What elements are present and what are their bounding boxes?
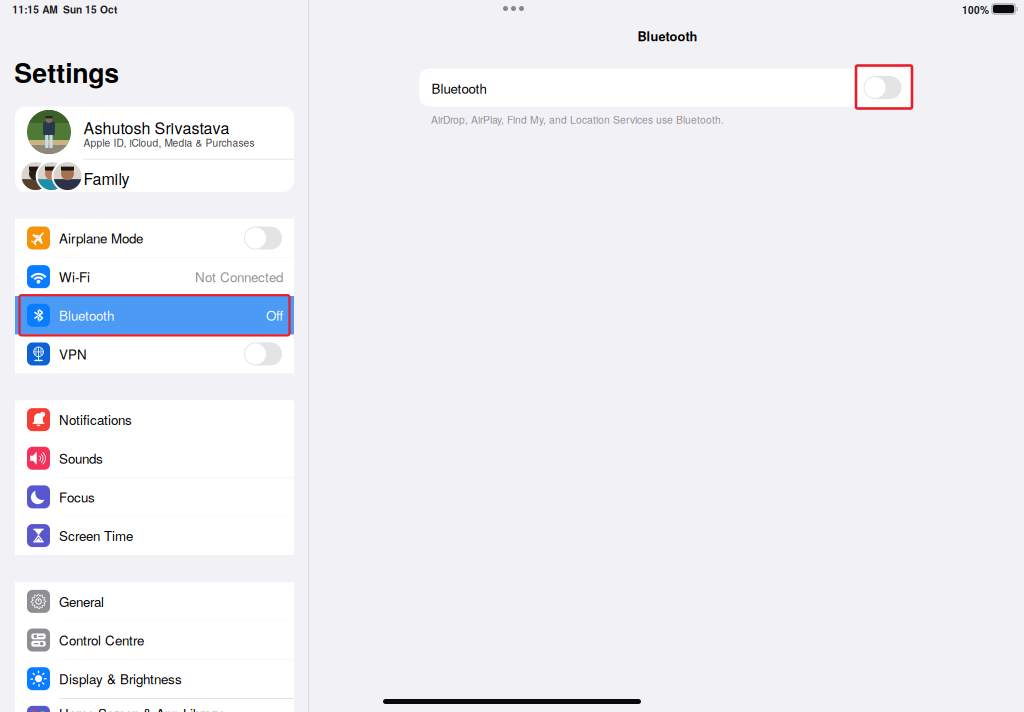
- staticText: Family: [83, 167, 129, 189]
- button[interactable]: Control Centre: [15, 621, 294, 659]
- staticText: 11:15 AM: [12, 2, 57, 17]
- staticText: Focus: [59, 487, 95, 506]
- staticText: Not Connected: [195, 267, 283, 286]
- staticText: General: [59, 592, 104, 611]
- staticText: Bluetooth: [637, 27, 697, 45]
- button[interactable]: Bluetooth: [419, 68, 913, 106]
- button[interactable]: Focus: [15, 478, 294, 516]
- button[interactable]: Wi-Fi: [15, 257, 294, 296]
- staticText: Off: [266, 305, 283, 325]
- button[interactable]: Airplane Mode: [15, 219, 294, 257]
- button[interactable]: VPN: [15, 335, 294, 373]
- staticText: 100%: [962, 2, 989, 17]
- staticText: Screen Time: [59, 526, 133, 545]
- staticText: Ashutosh Srivastava: [83, 116, 229, 139]
- staticText: Wi-Fi: [59, 267, 90, 286]
- staticText: Home Screen & App Library: [59, 703, 223, 712]
- button[interactable]: Family: [15, 160, 294, 192]
- staticText: VPN: [59, 344, 87, 363]
- staticText: Settings: [14, 53, 119, 91]
- button[interactable]: General: [15, 582, 294, 621]
- staticText: Airplane Mode: [59, 228, 143, 247]
- staticText: Apple ID, iCloud, Media & Purchases: [83, 135, 254, 149]
- staticText: Display & Brightness: [59, 669, 182, 688]
- button[interactable]: Sounds: [15, 439, 294, 477]
- staticText: Bluetooth: [431, 78, 486, 98]
- button[interactable]: Ashutosh Srivastava: [15, 106, 294, 159]
- button[interactable]: Display & Brightness: [15, 659, 294, 698]
- staticText: Notifications: [59, 410, 132, 429]
- staticText: Control Centre: [59, 630, 144, 649]
- staticText: Sun 15 Oct: [63, 2, 117, 17]
- button[interactable]: Home Screen & App Library: [0, 0, 1024, 712]
- staticText: Bluetooth: [59, 305, 114, 325]
- button[interactable]: Bluetooth: [15, 296, 294, 335]
- staticText: AirDrop, AirPlay, Find My, and Location …: [431, 112, 724, 127]
- button[interactable]: Notifications: [15, 400, 294, 439]
- staticText: Sounds: [59, 448, 103, 467]
- button[interactable]: Screen Time: [15, 516, 294, 555]
